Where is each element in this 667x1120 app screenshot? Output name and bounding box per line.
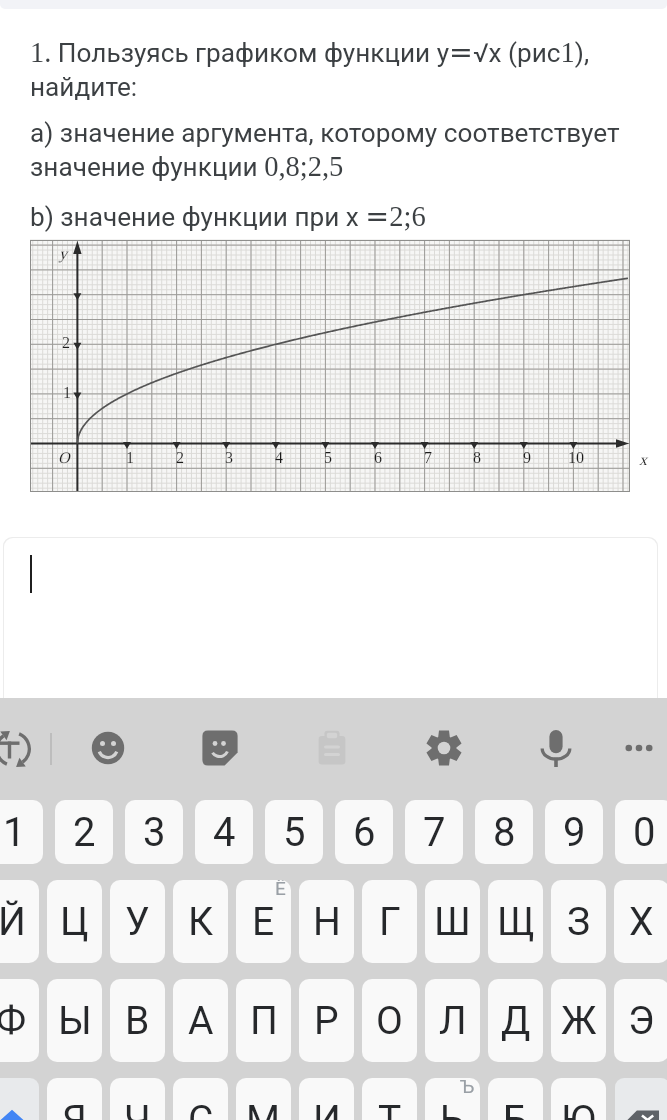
staticText: 4 xyxy=(275,449,283,467)
button[interactable]: У xyxy=(110,880,165,963)
staticText: 8 xyxy=(473,449,481,467)
staticText: 7 xyxy=(424,449,432,467)
staticText: Э xyxy=(628,998,655,1044)
button[interactable]: Shift xyxy=(0,1078,39,1120)
button[interactable]: В xyxy=(110,979,165,1062)
button[interactable]: 0 xyxy=(615,800,667,864)
staticText: 1. Пользуясь графиком функции y=√x (рис1… xyxy=(30,36,642,102)
staticText: И xyxy=(313,1097,341,1120)
staticText: Ъ xyxy=(460,1078,475,1097)
button[interactable]: Щ xyxy=(488,880,543,963)
staticText: 8 xyxy=(493,809,516,856)
staticText: Ж xyxy=(561,998,597,1044)
staticText: 2 xyxy=(62,334,70,352)
button[interactable]: Т xyxy=(362,1078,417,1120)
button[interactable]: Э xyxy=(614,979,667,1062)
button[interactable]: 9 xyxy=(545,800,603,864)
button[interactable]: А xyxy=(173,979,228,1062)
staticText: Я xyxy=(62,1097,87,1120)
button[interactable]: П xyxy=(236,979,291,1062)
button[interactable]: Stickers xyxy=(192,720,248,776)
staticText: Т xyxy=(378,1097,402,1120)
staticText: 5 xyxy=(283,809,306,856)
button[interactable]: 5 xyxy=(265,800,323,864)
button[interactable]: Й xyxy=(0,880,39,963)
button[interactable]: Backspace xyxy=(615,1078,667,1120)
staticText: К xyxy=(188,899,214,945)
staticText: Щ xyxy=(497,899,535,945)
staticText: 0 xyxy=(633,809,656,856)
button[interactable]: Р xyxy=(299,979,354,1062)
button[interactable]: Н xyxy=(299,880,354,963)
staticText: В xyxy=(125,998,150,1044)
button[interactable]: 1 xyxy=(0,800,43,864)
button[interactable]: О xyxy=(362,979,417,1062)
staticText: 6 xyxy=(353,809,376,856)
staticText: А xyxy=(188,998,214,1044)
staticText: Х xyxy=(629,899,654,945)
button[interactable]: Ё xyxy=(236,880,291,963)
button[interactable]: 8 xyxy=(475,800,533,864)
button[interactable]: Л xyxy=(425,979,480,1062)
staticText: Ё xyxy=(275,880,286,899)
button[interactable] xyxy=(3,537,658,698)
button[interactable]: 7 xyxy=(405,800,463,864)
staticText: Ш xyxy=(434,899,471,945)
staticText: М xyxy=(246,1097,281,1120)
button[interactable]: Ж xyxy=(551,979,606,1062)
staticText: Р xyxy=(314,998,339,1044)
staticText: Ц xyxy=(60,899,89,945)
button[interactable]: Ц xyxy=(47,880,102,963)
staticText: 1 xyxy=(3,809,26,856)
button[interactable]: Я xyxy=(47,1078,102,1120)
staticText: Ч xyxy=(124,1097,151,1120)
button[interactable]: More options xyxy=(611,720,667,776)
button[interactable]: И xyxy=(299,1078,354,1120)
staticText: Н xyxy=(313,899,341,945)
button[interactable]: К xyxy=(173,880,228,963)
button[interactable]: М xyxy=(236,1078,291,1120)
staticText: Е xyxy=(252,899,275,945)
staticText: 7 xyxy=(423,809,446,856)
button[interactable]: Ш xyxy=(425,880,480,963)
staticText: 2 xyxy=(73,809,96,856)
staticText: x xyxy=(639,451,647,469)
staticText: Д xyxy=(501,998,531,1044)
button[interactable]: Ф xyxy=(0,979,39,1062)
button[interactable]: Emoji xyxy=(80,720,136,776)
staticText: a) значение аргумента, которому соответс… xyxy=(30,118,642,182)
button[interactable]: Д xyxy=(488,979,543,1062)
button[interactable]: С xyxy=(173,1078,228,1120)
button[interactable]: Voice input xyxy=(528,720,584,776)
button[interactable]: Ч xyxy=(110,1078,165,1120)
staticText: 1 xyxy=(63,384,71,402)
button[interactable]: З xyxy=(551,880,606,963)
staticText: 9 xyxy=(523,449,531,467)
button[interactable]: 2 xyxy=(55,800,113,864)
staticText: 3 xyxy=(225,449,233,467)
staticText: 9 xyxy=(563,809,586,856)
staticText: O xyxy=(58,449,70,467)
button[interactable]: 6 xyxy=(335,800,393,864)
button[interactable]: Ы xyxy=(47,979,102,1062)
staticText: Л xyxy=(439,998,467,1044)
staticText: О xyxy=(376,998,403,1044)
button[interactable]: Translate xyxy=(0,720,39,776)
staticText: Г xyxy=(379,899,401,945)
button[interactable]: Clipboard xyxy=(304,720,360,776)
button[interactable]: Х xyxy=(614,880,667,963)
button[interactable]: Ю xyxy=(551,1078,606,1120)
button[interactable]: Settings xyxy=(416,720,472,776)
button[interactable]: 4 xyxy=(195,800,253,864)
staticText: 3 xyxy=(143,809,166,856)
staticText: 4 xyxy=(213,809,236,856)
staticText: П xyxy=(250,998,278,1044)
staticText: 2 xyxy=(176,449,184,467)
button[interactable]: 3 xyxy=(125,800,183,864)
staticText: С xyxy=(188,1097,214,1120)
button[interactable]: Ъ xyxy=(425,1078,480,1120)
staticText: y xyxy=(59,245,67,263)
button[interactable]: Б xyxy=(488,1078,543,1120)
button[interactable]: Г xyxy=(362,880,417,963)
staticText: 5 xyxy=(324,449,332,467)
